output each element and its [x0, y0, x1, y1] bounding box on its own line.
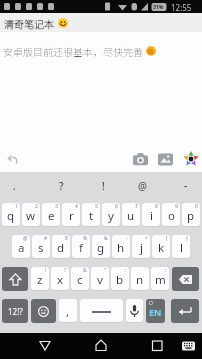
staticText: y	[108, 208, 114, 224]
button[interactable]: 7	[122, 203, 140, 226]
staticText: !	[102, 179, 105, 193]
staticText: v	[97, 272, 103, 288]
staticText: "	[104, 267, 107, 274]
staticText: m	[155, 272, 166, 288]
button[interactable]: '	[131, 267, 149, 290]
staticText: &	[104, 235, 108, 242]
button[interactable]: !	[31, 267, 49, 290]
staticText: z	[37, 272, 43, 288]
staticText: l	[180, 240, 183, 256]
staticText: ,	[66, 304, 70, 320]
button[interactable]	[87, 333, 115, 359]
button[interactable]: !	[93, 172, 114, 200]
button[interactable]	[6, 153, 18, 165]
staticText: 1	[15, 203, 18, 210]
staticText: -	[184, 179, 188, 193]
button[interactable]: ;	[151, 267, 169, 290]
staticText: i	[150, 208, 153, 224]
button[interactable]: :	[111, 267, 129, 290]
button[interactable]: )	[172, 235, 190, 258]
button[interactable]: %	[72, 235, 90, 258]
button[interactable]: 12!?	[2, 299, 28, 323]
button[interactable]: &	[92, 235, 110, 258]
staticText: '	[145, 267, 147, 274]
staticText: a	[18, 240, 25, 256]
button[interactable]	[31, 333, 59, 359]
staticText: 9	[175, 203, 178, 210]
button[interactable]	[126, 299, 143, 322]
staticText: 4	[75, 203, 78, 210]
staticText: 12!?	[8, 306, 23, 317]
staticText: k	[158, 240, 165, 256]
button[interactable]: 5	[82, 203, 100, 226]
button[interactable]: 3	[42, 203, 60, 226]
button[interactable]: 清奇笔记本	[0, 13, 202, 32]
staticText: 6	[115, 203, 118, 210]
staticText: (	[166, 235, 168, 242]
button[interactable]	[171, 299, 199, 323]
staticText: j	[140, 240, 143, 256]
button[interactable]	[2, 267, 28, 291]
button[interactable]	[172, 267, 199, 291]
staticText: 5	[95, 203, 98, 210]
button[interactable]: -	[112, 235, 130, 258]
button[interactable]	[133, 152, 148, 167]
button[interactable]: "	[91, 267, 109, 290]
staticText: ?	[59, 179, 64, 193]
staticText: h	[117, 240, 125, 256]
staticText: $	[65, 235, 68, 242]
staticText: 3	[55, 203, 58, 210]
button[interactable]: ?	[51, 172, 72, 200]
staticText: 0	[195, 203, 198, 210]
staticText: 8	[155, 203, 158, 210]
button[interactable]: 4	[62, 203, 80, 226]
staticText: #	[44, 235, 48, 242]
staticText: d	[57, 240, 65, 256]
staticText: ?	[64, 267, 67, 274]
button[interactable]: 6	[102, 203, 120, 226]
button[interactable]: @	[12, 235, 30, 258]
button[interactable]	[143, 333, 171, 359]
staticText: 31%	[153, 4, 164, 11]
button[interactable]: #	[32, 235, 50, 258]
button[interactable]: ,	[59, 299, 77, 322]
button[interactable]	[178, 333, 200, 359]
staticText: s	[38, 240, 44, 256]
button[interactable]: .	[4, 172, 25, 200]
staticText: o	[168, 208, 175, 224]
button[interactable]: $	[52, 235, 70, 258]
button[interactable]	[183, 151, 199, 167]
staticText: ;	[165, 267, 167, 274]
staticText: b	[116, 272, 124, 288]
staticText: r	[69, 208, 74, 224]
staticText: n	[136, 272, 144, 288]
button[interactable]	[158, 152, 173, 167]
button[interactable]: +	[132, 235, 150, 258]
button[interactable]: 安卓版目前还很基本，尽快完善	[3, 44, 156, 58]
button[interactable]: @	[132, 172, 153, 200]
staticText: c	[77, 272, 83, 288]
staticText: @	[23, 235, 28, 242]
button[interactable]	[31, 299, 56, 323]
staticText: x	[57, 272, 64, 288]
staticText: u	[127, 208, 135, 224]
staticText: )	[186, 235, 188, 242]
button[interactable]: 0	[182, 203, 200, 226]
button[interactable]	[80, 299, 123, 322]
button[interactable]: 9	[162, 203, 180, 226]
button[interactable]: EN	[146, 299, 165, 323]
button[interactable]: 8	[142, 203, 160, 226]
staticText: 安卓版目前还很基本，尽快完善	[3, 44, 143, 58]
staticText: f	[79, 240, 83, 256]
staticText: @	[138, 179, 147, 193]
button[interactable]: &	[71, 267, 89, 290]
staticText: :	[125, 267, 127, 274]
button[interactable]: (	[152, 235, 170, 258]
button[interactable]: 1	[2, 203, 20, 226]
staticText: 清奇笔记本	[4, 16, 54, 30]
button[interactable]: ?	[51, 267, 69, 290]
staticText: g	[97, 240, 105, 256]
staticText: w	[26, 208, 36, 224]
button[interactable]: 2	[22, 203, 40, 226]
button[interactable]: -	[175, 172, 196, 200]
